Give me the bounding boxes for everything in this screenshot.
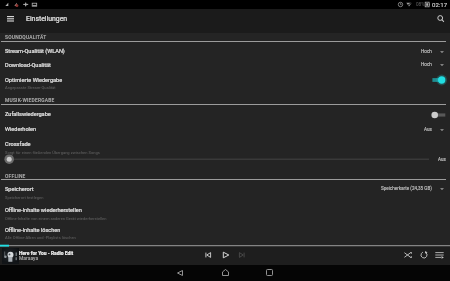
button[interactable]: Übersicht: [263, 266, 276, 279]
button[interactable]: [0, 223, 450, 241]
staticText: Speicherort festlegen: [5, 195, 44, 200]
staticText: Download-Qualität: [5, 62, 51, 69]
staticText: Crossfade: [5, 141, 31, 148]
button[interactable]: Wiederholen: [418, 249, 430, 261]
button[interactable]: [0, 71, 450, 89]
button[interactable]: Aktiviert: [428, 73, 448, 87]
button[interactable]: Nächster Titel: [236, 249, 248, 261]
staticText: Alle Offline-Alben und -Playlists lösche…: [5, 235, 76, 240]
staticText: OFFLINE: [5, 173, 26, 179]
button[interactable]: Menü: [3, 12, 17, 26]
staticText: Zufallswiedergabe: [5, 111, 51, 118]
staticText: SOUNDQUALITÄT: [5, 34, 47, 40]
staticText: Stream-Qualität (WLAN): [5, 48, 65, 55]
staticText: Angepasste Stream-Qualität: [5, 85, 56, 90]
button[interactable]: [0, 203, 450, 221]
button[interactable]: Wiedergabe: [220, 249, 232, 261]
button[interactable]: Warteschlange: [433, 249, 445, 261]
button[interactable]: Suchen: [434, 12, 447, 25]
staticText: Aus: [424, 127, 432, 132]
button[interactable]: [0, 136, 450, 164]
button[interactable]: Aus: [338, 123, 446, 136]
staticText: Offline-Inhalte wiederherstellen: [5, 207, 82, 214]
staticText: 08%: [416, 2, 425, 7]
staticText: Einstellungen: [26, 15, 68, 23]
staticText: Optimierte Wiedergabe: [5, 77, 63, 84]
button[interactable]: [0, 107, 450, 120]
staticText: Maraaya: [19, 255, 39, 261]
button[interactable]: Zurück: [173, 266, 186, 279]
staticText: Wiederholen: [5, 126, 36, 133]
button[interactable]: [0, 44, 450, 57]
staticText: Offline-Inhalte löschen: [5, 227, 61, 234]
staticText: Offline-Inhalte von einem anderen Gerät …: [5, 216, 107, 221]
staticText: Speicherort: [5, 186, 34, 193]
staticText: Sorgt für einen fließenden Übergang zwis…: [5, 150, 100, 155]
staticText: Speicherkarte (24,35 GB): [381, 186, 432, 191]
button[interactable]: Speicherkarte (24,35 GB): [338, 182, 446, 195]
button[interactable]: [0, 120, 450, 133]
button[interactable]: Zufallswiedergabe: [402, 249, 414, 261]
button[interactable]: Hoch: [338, 58, 446, 71]
button[interactable]: [0, 57, 450, 70]
staticText: Here for You - Radio Edit: [19, 250, 74, 256]
button[interactable]: Vorheriger Titel: [202, 249, 214, 261]
staticText: Hoch: [421, 49, 432, 54]
staticText: MUSIK-WIEDERGABE: [5, 97, 55, 103]
button[interactable]: [0, 182, 450, 200]
button[interactable]: Deaktiviert: [428, 108, 448, 122]
staticText: Hoch: [421, 62, 432, 67]
staticText: Aus: [438, 157, 446, 162]
button[interactable]: Hoch: [338, 45, 446, 58]
staticText: 02:17: [432, 1, 448, 8]
button[interactable]: Startbildschirm: [219, 266, 232, 279]
